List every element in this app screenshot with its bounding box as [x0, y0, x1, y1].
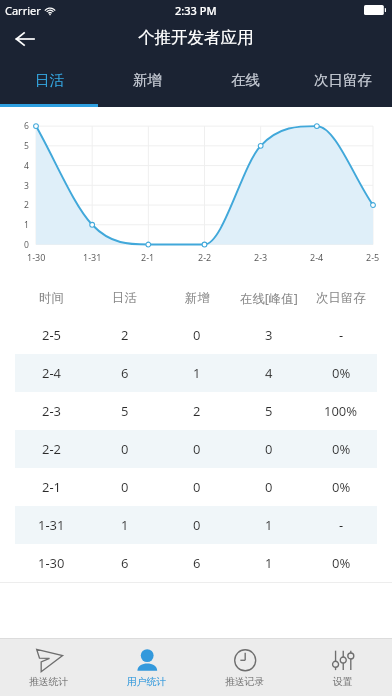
- staticText: 0%: [332, 364, 351, 382]
- staticText: Carrier: [5, 3, 41, 18]
- staticText: 5: [121, 402, 129, 420]
- button[interactable]: 2-4: [0, 354, 392, 392]
- staticText: 5: [265, 402, 273, 420]
- staticText: 2-1: [141, 251, 155, 263]
- button[interactable]: 2-1: [0, 468, 392, 506]
- staticText: 新增: [133, 71, 162, 89]
- staticText: 新增: [185, 290, 210, 306]
- staticText: 个推开发者应用: [138, 27, 254, 48]
- button[interactable]: 2-2: [0, 430, 392, 468]
- staticText: 100%: [324, 402, 358, 420]
- staticText: 日活: [35, 71, 64, 89]
- button[interactable]: Back: [7, 21, 43, 57]
- staticText: 2: [121, 326, 129, 344]
- staticText: 1-30: [27, 251, 46, 263]
- staticText: 2:33 PM: [175, 3, 217, 18]
- button[interactable]: 在线: [196, 62, 294, 107]
- button[interactable]: 设置: [294, 639, 392, 696]
- staticText: 推送统计: [29, 676, 69, 688]
- staticText: 日活: [112, 290, 137, 306]
- staticText: 2-1: [42, 478, 62, 496]
- staticText: 1: [265, 554, 273, 572]
- staticText: 1: [265, 516, 273, 534]
- staticText: 0%: [332, 440, 351, 458]
- staticText: 0: [24, 239, 29, 251]
- staticText: 设置: [333, 676, 353, 688]
- staticText: 0: [193, 516, 201, 534]
- staticText: 0: [265, 478, 273, 496]
- staticText: 2-4: [42, 364, 62, 382]
- staticText: 2-3: [254, 251, 268, 263]
- staticText: 0%: [332, 478, 351, 496]
- staticText: 2-2: [198, 251, 212, 263]
- staticText: 1: [24, 219, 29, 231]
- staticText: 0: [121, 440, 129, 458]
- staticText: 4: [24, 160, 29, 172]
- button[interactable]: 2-3: [0, 392, 392, 430]
- staticText: 3: [265, 326, 273, 344]
- staticText: 2-4: [310, 251, 324, 263]
- staticText: 2: [24, 199, 29, 211]
- staticText: 4: [265, 364, 273, 382]
- staticText: 2: [193, 402, 201, 420]
- staticText: 1: [193, 364, 201, 382]
- button[interactable]: 推送统计: [0, 639, 98, 696]
- staticText: 6: [121, 364, 129, 382]
- button[interactable]: 日活: [0, 62, 98, 107]
- button[interactable]: 2-5: [0, 316, 392, 354]
- staticText: -: [339, 326, 344, 344]
- staticText: 在线[峰值]: [240, 290, 298, 307]
- staticText: 5: [24, 140, 29, 152]
- staticText: 次日留存: [314, 71, 372, 89]
- staticText: 6: [121, 554, 129, 572]
- staticText: 在线: [231, 71, 260, 89]
- staticText: 6: [193, 554, 201, 572]
- staticText: 0: [121, 478, 129, 496]
- staticText: 推送记录: [225, 676, 265, 688]
- button[interactable]: 1-30: [0, 544, 392, 582]
- staticText: 用户统计: [127, 676, 167, 688]
- button[interactable]: 新增: [98, 62, 196, 107]
- staticText: 0%: [332, 554, 351, 572]
- staticText: 6: [24, 120, 29, 132]
- staticText: 2-3: [42, 402, 62, 420]
- staticText: 2-5: [42, 326, 62, 344]
- staticText: -: [339, 516, 344, 534]
- staticText: 2-2: [42, 440, 62, 458]
- staticText: 0: [265, 440, 273, 458]
- staticText: 0: [193, 440, 201, 458]
- staticText: 0: [193, 478, 201, 496]
- staticText: 1-30: [38, 554, 65, 572]
- staticText: 时间: [39, 290, 64, 306]
- button[interactable]: 用户统计: [98, 639, 196, 696]
- button[interactable]: 次日留存: [294, 62, 392, 107]
- staticText: 2-5: [366, 251, 380, 263]
- button[interactable]: 1-31: [0, 506, 392, 544]
- staticText: 1-31: [38, 516, 65, 534]
- staticText: 0: [193, 326, 201, 344]
- button[interactable]: 推送记录: [196, 639, 294, 696]
- staticText: 次日留存: [316, 290, 366, 306]
- staticText: 1: [121, 516, 129, 534]
- staticText: 1-31: [83, 251, 102, 263]
- staticText: 3: [24, 180, 29, 192]
